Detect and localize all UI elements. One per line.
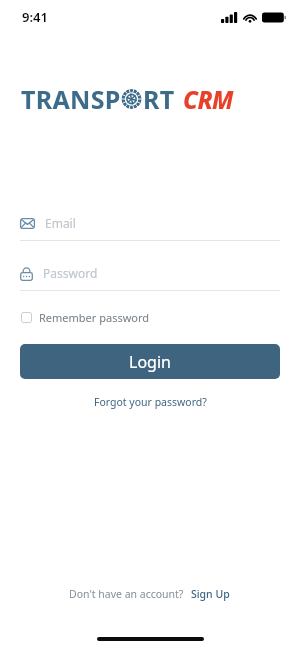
staticText: TRANSP — [21, 82, 121, 116]
staticText: Password — [43, 265, 98, 281]
button[interactable]: Sign Up — [189, 584, 232, 604]
button[interactable]: Login — [20, 344, 280, 379]
staticText: Don't have an account? — [69, 587, 184, 601]
staticText: CRM — [183, 83, 234, 116]
staticText: Login — [129, 351, 171, 373]
staticText: Remember password — [39, 310, 150, 325]
staticText: RT — [143, 82, 175, 116]
staticText: Email — [45, 215, 76, 231]
staticText: Forgot your password? — [94, 395, 207, 409]
button[interactable]: Email — [20, 212, 280, 241]
button[interactable]: Remember password — [20, 307, 151, 328]
button[interactable]: Forgot your password? — [88, 392, 213, 412]
staticText: Sign Up — [191, 587, 230, 601]
staticText: 9:41 — [22, 8, 48, 26]
button[interactable]: Password — [20, 262, 280, 291]
